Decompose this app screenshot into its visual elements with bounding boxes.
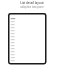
button[interactable] [10,19,46,22]
button[interactable] [10,31,46,34]
button[interactable] [10,16,46,19]
button[interactable] [10,22,46,25]
button[interactable] [10,52,46,55]
button[interactable] [10,46,46,49]
button[interactable] [10,34,46,37]
button[interactable] [10,43,46,46]
staticText: List detail layout [20,1,44,5]
button[interactable] [10,58,46,61]
button[interactable] [10,49,46,52]
button[interactable] [10,37,46,40]
button[interactable] [10,25,46,28]
button[interactable] [10,55,46,58]
button[interactable] [10,40,46,43]
staticText: adaptive two pane [20,5,44,9]
button[interactable] [10,28,46,31]
